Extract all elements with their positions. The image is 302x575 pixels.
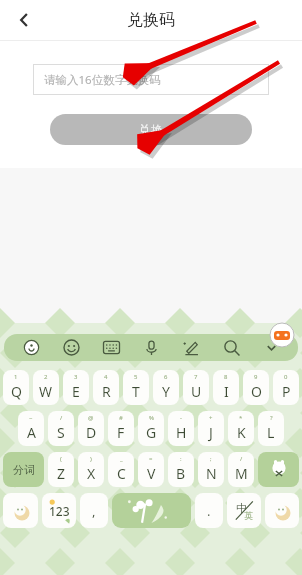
button[interactable]: Enter [265,493,299,528]
button[interactable]: Collapse [251,334,291,361]
button[interactable]: Backspace [258,452,299,487]
button[interactable]: 7 [183,370,209,405]
staticText: / [240,455,243,463]
staticText: K [237,423,246,442]
button[interactable]: 1 [3,370,29,405]
staticText: 2 [44,373,48,381]
button[interactable]: / [48,411,74,446]
staticText: _ [120,455,123,463]
staticText: ( [60,455,62,463]
staticText: 中 [236,501,247,515]
button[interactable]: 0 [273,370,299,405]
button[interactable]: ? [258,411,284,446]
button[interactable]: + [198,411,224,446]
staticText: / [60,414,63,422]
staticText: Z [57,464,66,483]
staticText: 9 [254,373,258,381]
staticText: 4 [104,373,108,381]
staticText: E [72,382,80,401]
button[interactable]: / [228,452,254,487]
staticText: 兑换 [138,122,164,138]
staticText: * [239,414,243,422]
staticText: L [267,423,275,442]
button[interactable]: 4 [93,370,119,405]
staticText: % [149,414,154,422]
button[interactable]: Emoji [51,334,91,361]
staticText: ~ [29,414,33,422]
button[interactable]: 兑换 [50,114,252,145]
staticText: V [147,464,156,483]
button[interactable]: * [228,411,254,446]
button[interactable]: Emoji [3,493,38,528]
button[interactable]: Voice input [131,334,171,361]
staticText: @ [88,414,94,422]
button[interactable]: Back [8,4,40,36]
staticText: I [224,382,229,401]
button[interactable]: 8 [213,370,239,405]
button[interactable]: @ [78,411,104,446]
staticText: # [119,414,123,422]
staticText: U [191,382,202,401]
staticText: 分词 [13,463,35,477]
button[interactable]: - [168,411,194,446]
button[interactable]: : [168,452,194,487]
button[interactable]: 9 [243,370,269,405]
button[interactable]: Assistant [270,323,294,347]
button[interactable]: ( [48,452,74,487]
staticText: C [117,464,126,483]
button[interactable]: _ [108,452,134,487]
button[interactable]: 3 [63,370,89,405]
staticText: . [207,502,211,520]
staticText: + [209,414,213,422]
staticText: 1 [14,373,18,381]
button[interactable]: Switch language [227,493,261,528]
staticText: , [92,502,96,520]
button[interactable]: , [80,493,108,528]
button[interactable]: % [138,411,164,446]
button[interactable]: 6 [153,370,179,405]
staticText: O [251,382,262,401]
button[interactable]: . [195,493,223,528]
button[interactable]: Logo [11,334,51,361]
staticText: A [27,423,36,442]
button[interactable]: Space [112,493,191,528]
button[interactable]: Handwriting [171,334,211,361]
staticText: X [87,464,96,483]
button[interactable]: 2 [33,370,59,405]
button[interactable]: Keyboard [91,334,131,361]
button[interactable]: # [108,411,134,446]
button[interactable]: Search [211,334,251,361]
staticText: ? [270,414,273,422]
staticText: 英 [244,510,253,521]
staticText: P [282,382,291,401]
button[interactable]: ~ [18,411,44,446]
staticText: J [209,423,213,442]
staticText: 兑换码 [127,10,175,30]
staticText: ) [90,455,92,463]
button[interactable]: 5 [123,370,149,405]
staticText: Y [162,382,170,401]
staticText: Q [11,382,22,401]
staticText: 123 [49,503,70,519]
staticText: B [176,464,186,483]
button[interactable]: ; [198,452,224,487]
staticText: 5 [134,373,138,381]
staticText: H [176,423,187,442]
button[interactable]: 分词 [3,452,44,487]
staticText: G [146,423,157,442]
button[interactable]: = [138,452,164,487]
staticText: = [149,455,153,463]
staticText: M [235,464,248,483]
staticText: D [86,423,97,442]
staticText: 3 [74,373,78,381]
staticText: 请输入16位数字兑换码 [44,72,161,88]
staticText: 6 [164,373,168,381]
staticText: S [57,423,65,442]
staticText: ; [210,455,212,463]
staticText: N [206,464,217,483]
staticText: R [102,382,111,401]
staticText: W [39,382,53,401]
button[interactable]: ) [78,452,104,487]
button[interactable]: 123 [42,493,76,528]
button[interactable]: 请输入16位数字兑换码 [33,64,269,95]
